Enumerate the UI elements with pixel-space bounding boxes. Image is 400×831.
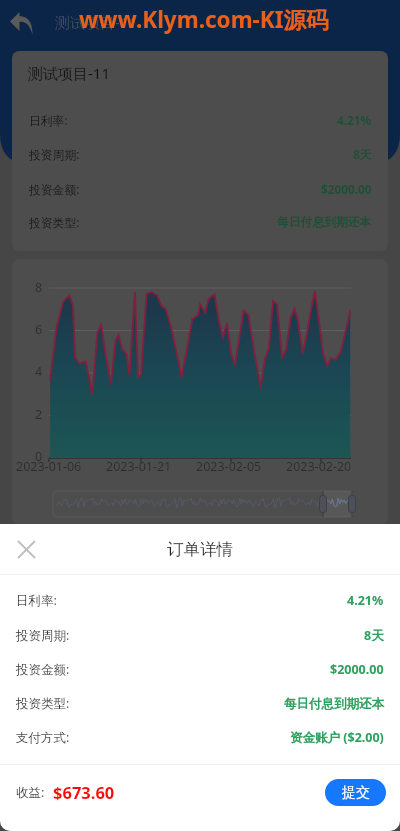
staticText: 测试项目-11 (55, 12, 137, 32)
staticText: 投资周期: (29, 146, 80, 162)
staticText: $2000.00 (330, 661, 384, 678)
staticText: 订单详情 (167, 539, 233, 560)
staticText: 投资金额: (29, 181, 80, 197)
staticText: 每日付息到期还本 (284, 696, 384, 712)
staticText: 6 (35, 321, 43, 338)
button[interactable]: Back (0, 0, 42, 42)
staticText: 投资类型: (29, 214, 80, 230)
staticText: 2023-01-21 (106, 458, 172, 475)
staticText: 8 (35, 279, 43, 296)
staticText: 资金账户 ($2.00) (290, 729, 384, 746)
staticText: 0 (35, 448, 43, 465)
staticText: 投资金额: (16, 661, 70, 678)
staticText: 2023-01-06 (16, 458, 82, 475)
staticText: 提交 (342, 784, 370, 802)
button[interactable]: Close (4, 527, 48, 571)
staticText: $2000.00 (321, 181, 372, 197)
staticText: 4.21% (347, 592, 384, 609)
staticText: 日利率: (16, 592, 57, 609)
staticText: www.Klym.com-KI源码 (79, 4, 329, 35)
staticText: 收益: (16, 784, 45, 801)
staticText: 日利率: (29, 112, 68, 128)
staticText: $673.60 (53, 781, 115, 803)
staticText: 4.21% (337, 112, 372, 128)
staticText: 每日付息到期还本 (277, 215, 372, 230)
staticText: 2 (35, 406, 43, 423)
staticText: 2023-02-05 (196, 458, 262, 475)
staticText: 投资类型: (16, 695, 70, 712)
staticText: 4 (35, 363, 43, 380)
staticText: 支付方式: (16, 729, 70, 746)
staticText: 测试项目-11 (28, 63, 110, 83)
button[interactable]: 提交 (325, 779, 386, 806)
staticText: 投资周期: (16, 627, 70, 644)
staticText: 8天 (353, 146, 372, 162)
staticText: 8天 (364, 627, 384, 644)
staticText: 2023-02-20 (286, 458, 352, 475)
